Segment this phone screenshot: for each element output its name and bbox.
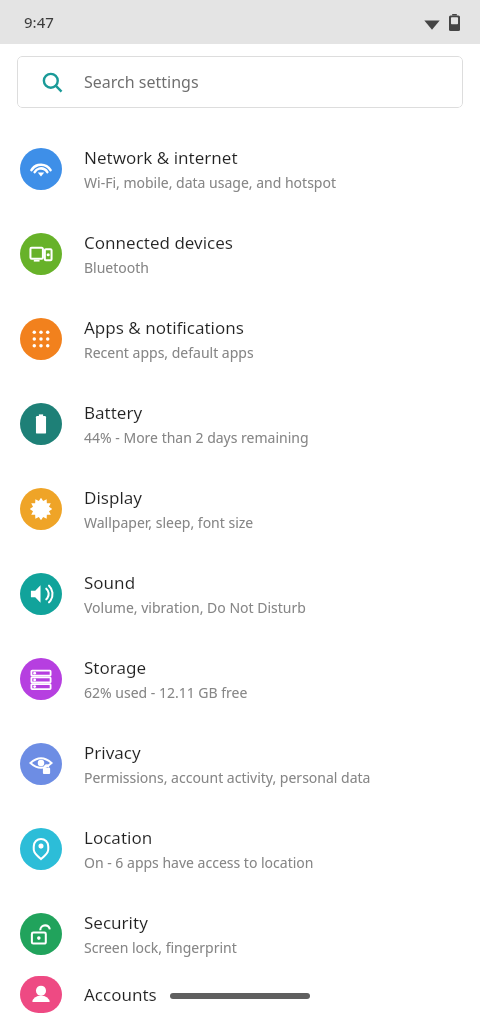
button[interactable]: Network & internet <box>0 126 480 211</box>
staticText: 62% used - 12.11 GB free <box>84 683 248 702</box>
staticText: Apps & notifications <box>84 316 244 339</box>
staticText: Connected devices <box>84 231 234 254</box>
staticText: Wallpaper, sleep, font size <box>84 513 254 532</box>
staticText: Volume, vibration, Do Not Disturb <box>84 598 306 617</box>
staticText: Network & internet <box>84 146 238 169</box>
staticText: On - 6 apps have access to location <box>84 853 314 872</box>
staticText: Screen lock, fingerprint <box>84 938 237 957</box>
staticText: Privacy <box>84 741 141 764</box>
button[interactable]: Privacy <box>0 721 480 806</box>
staticText: Location <box>84 826 153 849</box>
button[interactable]: Search settings <box>17 56 463 108</box>
button[interactable]: Storage <box>0 636 480 721</box>
staticText: Storage <box>84 656 147 679</box>
staticText: Permissions, account activity, personal … <box>84 768 371 787</box>
staticText: Security <box>84 911 148 934</box>
staticText: 9:47 <box>24 12 54 32</box>
button[interactable]: Location <box>0 806 480 891</box>
staticText: Battery <box>84 401 143 424</box>
button[interactable]: Battery <box>0 381 480 466</box>
staticText: Wi-Fi, mobile, data usage, and hotspot <box>84 173 336 192</box>
staticText: Search settings <box>84 71 199 93</box>
staticText: Accounts <box>84 983 157 1006</box>
staticText: Recent apps, default apps <box>84 343 254 362</box>
staticText: Display <box>84 486 142 509</box>
staticText: Sound <box>84 571 136 594</box>
staticText: Bluetooth <box>84 258 149 277</box>
button[interactable]: Security <box>0 891 480 976</box>
staticText: 44% - More than 2 days remaining <box>84 428 309 447</box>
button[interactable]: Apps & notifications <box>0 296 480 381</box>
button[interactable]: Display <box>0 466 480 551</box>
button[interactable]: Connected devices <box>0 211 480 296</box>
button[interactable]: Accounts <box>0 976 480 1013</box>
button[interactable]: Sound <box>0 551 480 636</box>
